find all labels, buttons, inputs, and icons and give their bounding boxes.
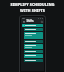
button[interactable]: Add shift xyxy=(22,24,25,27)
staticText: Shifts xyxy=(26,19,34,23)
button[interactable]: Menu xyxy=(21,19,44,23)
button[interactable] xyxy=(24,40,43,43)
button[interactable]: Menu xyxy=(22,20,25,23)
staticText: WITH SHIFTS xyxy=(20,8,45,13)
button[interactable]: Search xyxy=(40,20,43,23)
button[interactable] xyxy=(24,59,43,62)
staticText: SIMPLIFY SCHEDULING xyxy=(10,2,55,7)
button[interactable] xyxy=(24,24,43,27)
button[interactable] xyxy=(24,28,43,31)
button[interactable] xyxy=(24,44,43,49)
button[interactable] xyxy=(24,50,43,53)
button[interactable] xyxy=(24,54,43,58)
button[interactable] xyxy=(24,32,43,39)
